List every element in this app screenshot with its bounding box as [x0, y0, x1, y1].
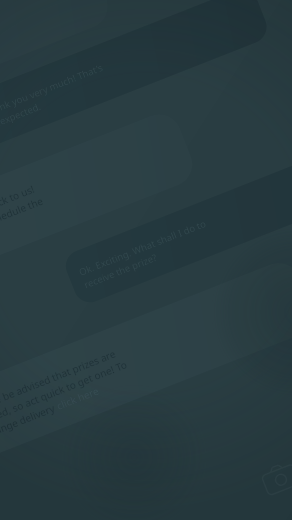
button[interactable]: Scam SMS conversation photo [0, 0, 292, 520]
